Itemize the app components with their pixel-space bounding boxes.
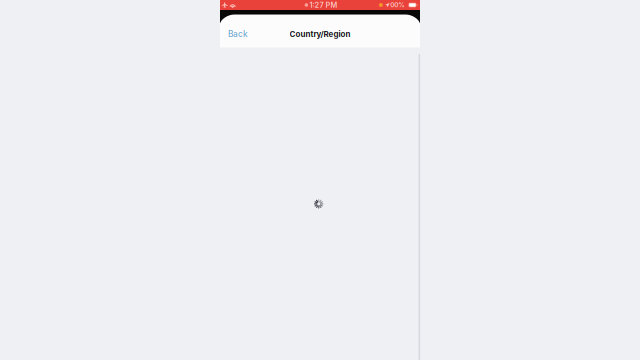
button[interactable]: Back [223,23,253,45]
staticText: Back [228,29,248,39]
staticText: 1:27 PM [309,1,337,9]
staticText: Country/Region [289,29,350,39]
staticText: 00% [390,1,404,9]
